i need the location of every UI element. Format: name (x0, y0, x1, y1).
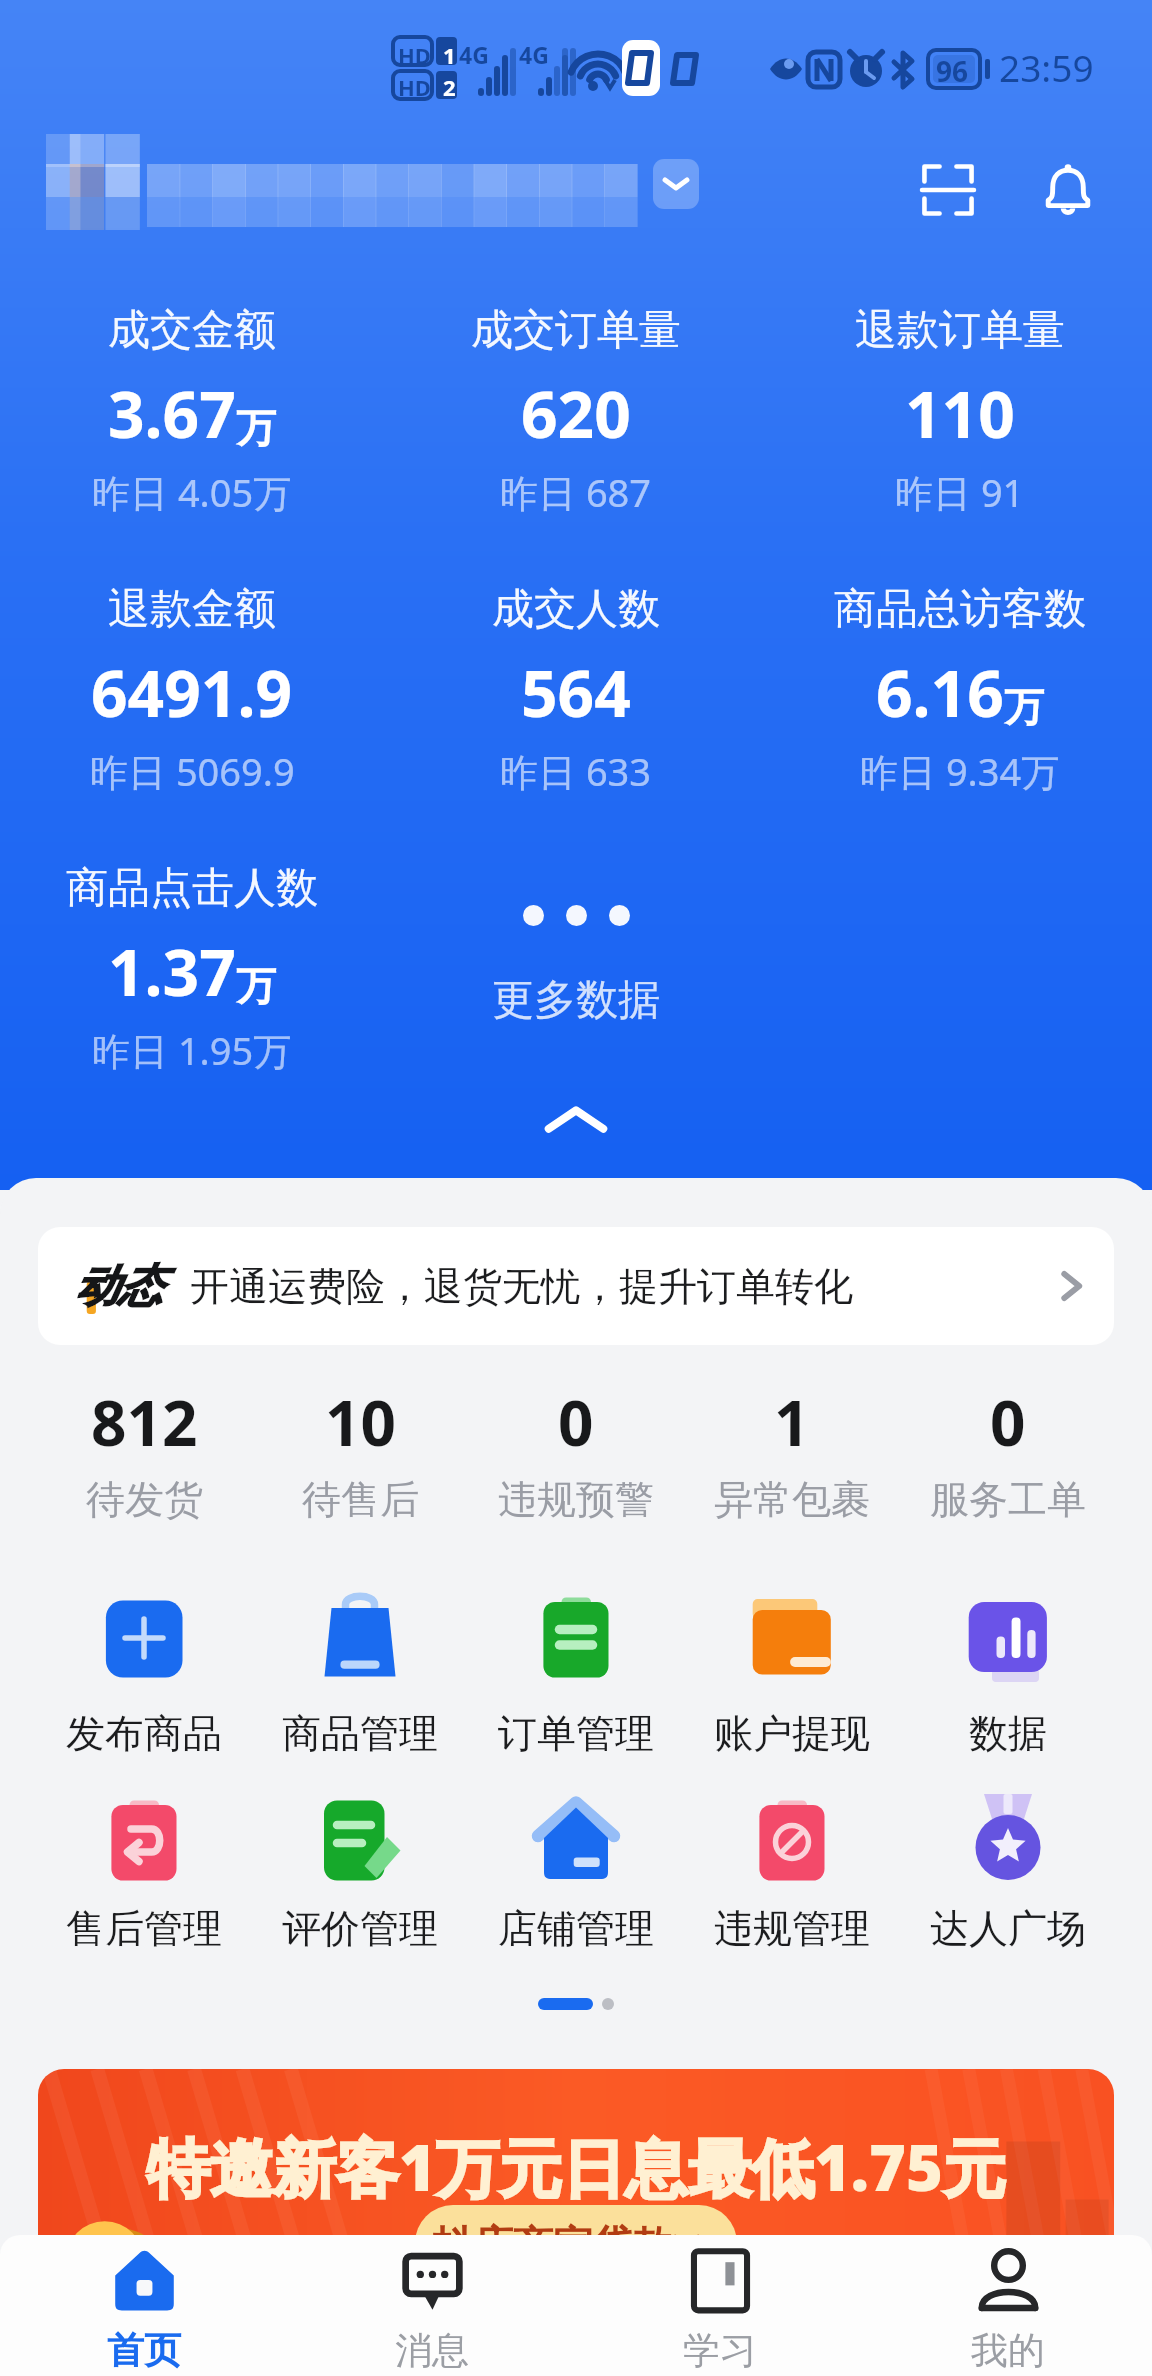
button[interactable]: 售后管理 (36, 1792, 252, 1953)
button[interactable]: 发布商品 (36, 1589, 252, 1758)
staticText: 成交金额 (108, 304, 276, 357)
button[interactable]: 抖店商家贷款>> (38, 2069, 1114, 2359)
staticText: 1 (774, 1380, 810, 1464)
button[interactable]: 违规管理 (684, 1792, 900, 1953)
staticText: 6.16 (876, 649, 1004, 736)
staticText: 万 (1004, 682, 1044, 732)
button[interactable]: Scan (896, 138, 1000, 242)
staticText: 0 (990, 1380, 1026, 1464)
button[interactable]: 10 (252, 1380, 468, 1524)
staticText: 退款金额 (108, 583, 276, 636)
staticText: 账户提现 (714, 1709, 870, 1758)
button[interactable]: Notifications (1016, 138, 1120, 242)
staticText: 抖店商家贷款>> (433, 2216, 719, 2271)
staticText: 我的 (971, 2327, 1045, 2374)
staticText: 开通运费险，退货无忧，提升订单转化 (190, 1262, 853, 1311)
button[interactable]: 812 (36, 1380, 252, 1524)
staticText: 违规管理 (714, 1904, 870, 1953)
staticText: 6491.9 (91, 649, 293, 736)
staticText: 退款订单量 (855, 304, 1065, 357)
staticText: 店铺管理 (498, 1904, 654, 1953)
staticText: 商品点击人数 (66, 862, 318, 915)
button[interactable]: 0 (900, 1380, 1116, 1524)
staticText: 售后管理 (66, 1904, 222, 1953)
staticText: 96 (936, 52, 969, 90)
button[interactable]: 达人广场 (900, 1792, 1116, 1953)
staticText: 成交人数 (492, 583, 660, 636)
staticText: 消息 (395, 2327, 469, 2374)
staticText: 23:59 (999, 42, 1094, 92)
button[interactable]: 账户提现 (684, 1589, 900, 1758)
staticText: 违规预警 (498, 1475, 654, 1524)
staticText: HD (398, 72, 431, 102)
button[interactable]: 订单管理 (468, 1589, 684, 1758)
staticText: 达人广场 (930, 1904, 1086, 1953)
staticText: 发布商品 (66, 1709, 222, 1758)
staticText: 110 (905, 370, 1015, 457)
staticText: 更多数据 (492, 974, 660, 1027)
staticText: 812 (91, 1380, 198, 1464)
staticText: 商品管理 (282, 1709, 438, 1758)
button[interactable]: 首页 (0, 2235, 288, 2376)
button[interactable]: Collapse (0, 1100, 1152, 1140)
staticText: 异常包裹 (714, 1475, 870, 1524)
staticText: 动态 (74, 1259, 162, 1314)
staticText: 服务工单 (930, 1475, 1086, 1524)
button[interactable] (46, 134, 699, 234)
staticText: 待发货 (86, 1475, 203, 1524)
staticText: 昨日 1.95万 (92, 1024, 292, 1076)
button[interactable]: 商品管理 (252, 1589, 468, 1758)
button[interactable]: 更多数据 (492, 905, 660, 1027)
staticText: 昨日 4.05万 (92, 466, 292, 518)
staticText: 1 (443, 40, 456, 70)
button[interactable]: 评价管理 (252, 1792, 468, 1953)
staticText: 成交订单量 (471, 304, 681, 357)
staticText: 0 (558, 1380, 594, 1464)
staticText: 1.37 (108, 928, 236, 1015)
staticText: 数据 (969, 1709, 1047, 1758)
staticText: 万 (236, 961, 276, 1011)
button[interactable]: 我的 (864, 2235, 1152, 2376)
button[interactable]: 学习 (576, 2235, 864, 2376)
button[interactable]: 1 (684, 1380, 900, 1524)
staticText: 昨日 5069.9 (90, 745, 295, 797)
staticText: 学习 (683, 2327, 757, 2374)
staticText: 评价管理 (282, 1904, 438, 1953)
staticText: 620 (521, 370, 631, 457)
staticText: 特邀新客1万元日息最低1.75元 (147, 2124, 1006, 2210)
button[interactable]: 消息 (288, 2235, 576, 2376)
staticText: 10 (325, 1380, 396, 1464)
button[interactable]: 店铺管理 (468, 1792, 684, 1953)
staticText: 564 (521, 649, 631, 736)
staticText: 昨日 633 (500, 745, 652, 797)
staticText: 3.67 (108, 370, 236, 457)
staticText: 4G (519, 39, 549, 70)
button[interactable]: 数据 (900, 1589, 1116, 1758)
staticText: HD (398, 40, 431, 70)
staticText: 2 (443, 72, 456, 102)
staticText: 万 (236, 403, 276, 453)
staticText: 商品总访客数 (834, 583, 1086, 636)
staticText: 待售后 (302, 1475, 419, 1524)
staticText: 昨日 9.34万 (860, 745, 1060, 797)
staticText: 订单管理 (498, 1709, 654, 1758)
staticText: 首页 (107, 2327, 181, 2374)
staticText: 昨日 91 (895, 466, 1025, 518)
staticText: 4G (459, 39, 489, 70)
button[interactable]: 0 (468, 1380, 684, 1524)
staticText: 昨日 687 (500, 466, 652, 518)
button[interactable]: 动态 (38, 1227, 1114, 1345)
